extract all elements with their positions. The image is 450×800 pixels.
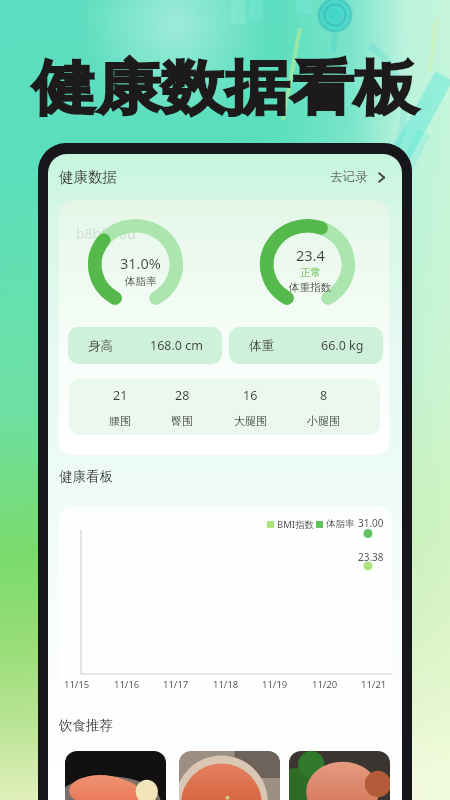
staticText: 8 <box>320 387 328 404</box>
staticText: 健康数据看板 <box>32 52 418 126</box>
staticText: 11/15 <box>64 678 90 691</box>
staticText: 健康看板 <box>59 468 113 485</box>
staticText: 31.00 <box>358 516 384 530</box>
staticText: 身高 <box>88 338 113 354</box>
button[interactable] <box>65 751 166 800</box>
button[interactable]: 身高 <box>68 327 222 364</box>
staticText: 21 <box>113 387 128 404</box>
staticText: 腰围 <box>109 414 131 428</box>
staticText: 168.0 cm <box>150 337 203 354</box>
staticText: 11/19 <box>262 678 288 691</box>
staticText: 大腿围 <box>234 414 267 428</box>
staticText: 11/21 <box>361 678 387 691</box>
staticText: 体脂率 <box>125 275 157 288</box>
staticText: 66.0 kg <box>321 337 364 354</box>
staticText: b8bf8f0d <box>76 224 136 243</box>
staticText: 28 <box>175 387 190 404</box>
staticText: 11/18 <box>213 678 239 691</box>
staticText: 23.4 <box>296 245 325 265</box>
staticText: BMI指数 <box>277 518 315 531</box>
staticText: 31.0% <box>120 253 161 273</box>
button[interactable]: 体重 <box>229 327 383 364</box>
staticText: 体重指数 <box>289 281 331 294</box>
staticText: 23.38 <box>358 550 384 564</box>
staticText: 饮食推荐 <box>59 717 113 734</box>
staticText: 16 <box>243 387 258 404</box>
staticText: 健康数据 <box>59 168 117 186</box>
button[interactable] <box>289 751 390 800</box>
button[interactable] <box>179 751 280 800</box>
staticText: 11/20 <box>312 678 338 691</box>
staticText: 去记录 <box>330 169 368 185</box>
staticText: 体脂率 <box>326 518 355 530</box>
staticText: 臀围 <box>171 414 193 428</box>
button[interactable]: 去记录 <box>326 165 392 189</box>
staticText: 11/16 <box>114 678 140 691</box>
staticText: 11/17 <box>163 678 189 691</box>
staticText: 体重 <box>249 338 274 354</box>
staticText: 小腿围 <box>307 414 340 428</box>
staticText: 正常 <box>300 266 321 279</box>
